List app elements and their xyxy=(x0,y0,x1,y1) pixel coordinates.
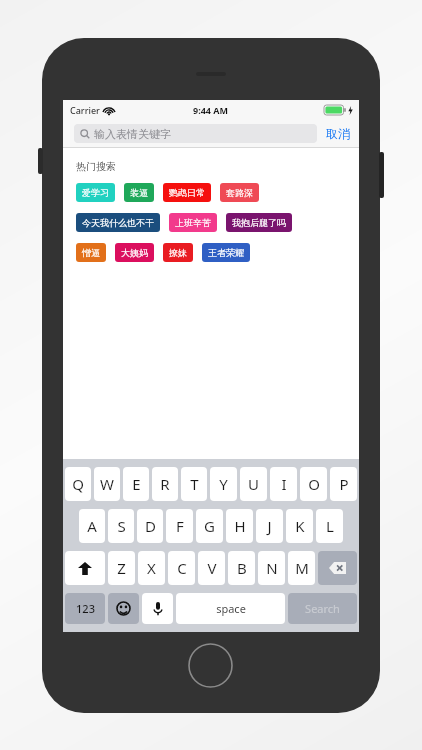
button[interactable]: 鹦鹉日常 xyxy=(163,183,211,202)
button[interactable]: Shift xyxy=(65,551,105,585)
staticText: H xyxy=(234,516,246,536)
button[interactable]: N xyxy=(258,551,285,585)
staticText: Search xyxy=(305,601,340,616)
button[interactable]: S xyxy=(108,509,134,543)
button[interactable]: U xyxy=(240,467,267,501)
staticText: G xyxy=(204,516,215,536)
staticText: Q xyxy=(72,474,84,494)
button[interactable]: 套路深 xyxy=(220,183,259,202)
staticText: 我抱后腿了吗 xyxy=(232,217,286,228)
staticText: 大姨妈 xyxy=(121,247,148,258)
staticText: X xyxy=(147,558,156,578)
button[interactable]: 123 xyxy=(65,593,105,624)
button[interactable]: P xyxy=(330,467,357,501)
staticText: F xyxy=(176,516,184,536)
button[interactable]: X xyxy=(138,551,165,585)
staticText: 输入表情关键字 xyxy=(94,127,171,141)
staticText: I xyxy=(281,474,287,494)
button[interactable]: 上班辛苦 xyxy=(169,213,217,232)
staticText: 套路深 xyxy=(226,187,253,198)
staticText: W xyxy=(100,474,114,494)
staticText: O xyxy=(308,474,320,494)
button[interactable]: T xyxy=(181,467,207,501)
button[interactable]: 我抱后腿了吗 xyxy=(226,213,292,232)
staticText: R xyxy=(160,474,170,494)
button[interactable]: Search xyxy=(288,593,357,624)
button[interactable]: F xyxy=(166,509,193,543)
staticText: P xyxy=(339,474,349,494)
button[interactable]: B xyxy=(228,551,255,585)
staticText: 装逼 xyxy=(130,187,148,198)
staticText: Z xyxy=(117,558,126,578)
staticText: K xyxy=(295,516,305,536)
staticText: B xyxy=(237,558,247,578)
staticText: A xyxy=(87,516,97,536)
staticText: 王者荣耀 xyxy=(208,247,244,258)
staticText: Y xyxy=(219,474,228,494)
button[interactable]: C xyxy=(168,551,195,585)
button[interactable]: Backspace xyxy=(318,551,357,585)
button[interactable]: R xyxy=(152,467,178,501)
staticText: 上班辛苦 xyxy=(175,217,211,228)
button[interactable]: I xyxy=(270,467,297,501)
staticText: C xyxy=(177,558,187,578)
button[interactable]: V xyxy=(198,551,225,585)
button[interactable]: Z xyxy=(108,551,135,585)
staticText: Carrier xyxy=(70,104,100,116)
staticText: 123 xyxy=(76,601,95,616)
staticText: 撩妹 xyxy=(169,247,187,258)
staticText: T xyxy=(190,474,199,494)
button[interactable]: Dictate xyxy=(142,593,173,624)
button[interactable]: E xyxy=(123,467,149,501)
button[interactable]: M xyxy=(288,551,315,585)
button[interactable]: H xyxy=(226,509,253,543)
staticText: 今天我什么也不干 xyxy=(82,217,154,228)
button[interactable]: 爱学习 xyxy=(76,183,115,202)
button[interactable]: 今天我什么也不干 xyxy=(76,213,160,232)
staticText: V xyxy=(207,558,217,578)
staticText: 9:44 AM xyxy=(193,104,229,116)
staticText: S xyxy=(117,516,126,536)
button[interactable]: 撩妹 xyxy=(163,243,193,262)
button[interactable]: W xyxy=(94,467,120,501)
button[interactable]: D xyxy=(137,509,163,543)
button[interactable]: 憎逼 xyxy=(76,243,106,262)
staticText: D xyxy=(145,516,156,536)
staticText: M xyxy=(295,558,309,578)
staticText: J xyxy=(267,516,272,536)
button[interactable]: 取消 xyxy=(317,119,359,147)
staticText: space xyxy=(216,601,246,616)
button[interactable]: space xyxy=(176,593,285,624)
staticText: 憎逼 xyxy=(82,247,100,258)
staticText: U xyxy=(248,474,259,494)
button[interactable]: Y xyxy=(210,467,237,501)
staticText: L xyxy=(326,516,334,536)
staticText: N xyxy=(266,558,278,578)
button[interactable]: G xyxy=(196,509,223,543)
button[interactable]: A xyxy=(79,509,105,543)
button[interactable]: K xyxy=(286,509,313,543)
button[interactable]: J xyxy=(256,509,283,543)
button[interactable]: 输入表情关键字 xyxy=(74,124,317,143)
button[interactable]: 装逼 xyxy=(124,183,154,202)
button[interactable]: Q xyxy=(65,467,91,501)
staticText: 热门搜索 xyxy=(76,160,116,173)
staticText: E xyxy=(132,474,141,494)
button[interactable]: L xyxy=(316,509,343,543)
staticText: 取消 xyxy=(326,126,350,141)
button[interactable]: O xyxy=(300,467,327,501)
staticText: 爱学习 xyxy=(82,187,109,198)
button[interactable]: 王者荣耀 xyxy=(202,243,250,262)
button[interactable]: 大姨妈 xyxy=(115,243,154,262)
button[interactable]: Emoji xyxy=(108,593,139,624)
staticText: 鹦鹉日常 xyxy=(169,187,205,198)
